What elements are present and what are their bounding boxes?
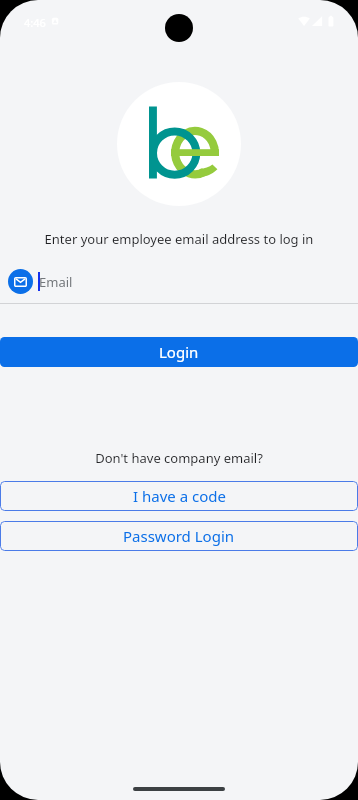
staticText: Password Login xyxy=(123,526,235,546)
staticText: Login xyxy=(159,342,199,362)
button[interactable]: Password Login xyxy=(0,521,358,551)
staticText: Email xyxy=(39,273,73,291)
staticText: 4:46 xyxy=(24,15,46,30)
staticText: Enter your employee email address to log… xyxy=(0,230,358,248)
staticText: Don't have company email? xyxy=(0,449,358,467)
button[interactable]: Email xyxy=(0,261,358,302)
staticText: I have a code xyxy=(133,486,226,506)
button[interactable]: I have a code xyxy=(0,481,358,511)
other: Email xyxy=(8,269,33,294)
button[interactable]: Login xyxy=(0,337,358,367)
